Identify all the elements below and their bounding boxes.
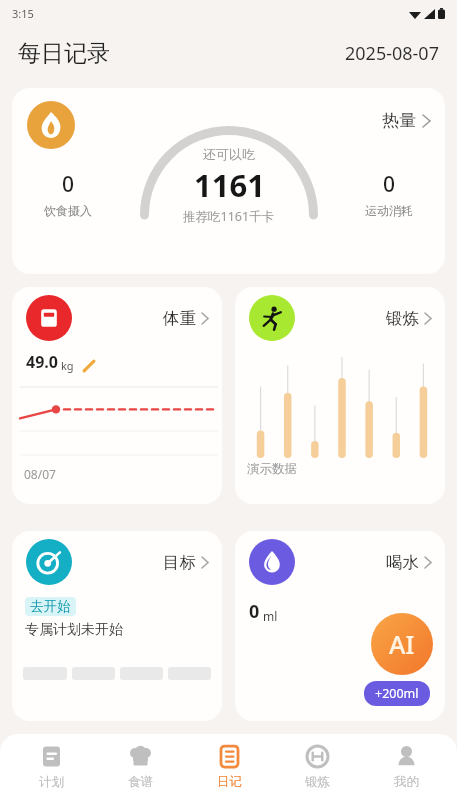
button[interactable]: 2025-08-07: [345, 41, 439, 66]
staticText: AI: [389, 627, 415, 661]
button[interactable]: 体重: [163, 308, 209, 329]
staticText: 0: [383, 170, 396, 199]
other: Weight: [26, 295, 72, 341]
staticText: 0: [249, 599, 260, 624]
button[interactable]: 热量: [382, 110, 431, 131]
other: Water: [249, 539, 295, 585]
staticText: 运动消耗: [365, 203, 413, 218]
staticText: 还可以吃: [203, 146, 255, 162]
button[interactable]: AI assistant: [371, 613, 433, 675]
staticText: 喝水: [386, 552, 419, 573]
staticText: 饮食摄入: [44, 203, 92, 218]
button[interactable]: 锻炼: [279, 742, 355, 792]
staticText: 1161: [194, 164, 265, 206]
staticText: 体重: [163, 308, 196, 329]
staticText: 热量: [382, 110, 416, 131]
staticText: 49.0: [26, 351, 58, 373]
button[interactable]: 我的: [368, 742, 444, 792]
staticText: 我的: [394, 774, 419, 790]
staticText: 08/07: [24, 466, 56, 482]
button[interactable]: Water: [235, 531, 445, 721]
button[interactable]: Weight: [12, 287, 222, 504]
staticText: 锻炼: [305, 774, 330, 790]
staticText: 食谱: [128, 774, 153, 790]
button[interactable]: Edit weight: [82, 359, 96, 373]
button[interactable]: 目标: [163, 552, 209, 573]
button[interactable]: 食谱: [102, 742, 178, 792]
staticText: 目标: [163, 552, 196, 573]
staticText: 0: [62, 170, 75, 199]
button[interactable]: Goal: [12, 531, 222, 721]
staticText: 3:15: [12, 6, 34, 21]
staticText: 锻炼: [386, 308, 419, 329]
staticText: 去开始: [30, 598, 71, 615]
staticText: 日记: [217, 774, 242, 790]
staticText: 推荐吃1161千卡: [183, 208, 275, 225]
button[interactable]: Calories: [12, 88, 445, 274]
staticText: 每日记录: [18, 39, 110, 68]
other: Goal: [26, 539, 72, 585]
staticText: kg: [61, 358, 74, 373]
button[interactable]: 日记: [191, 742, 267, 792]
button[interactable]: 锻炼: [386, 308, 432, 329]
other: Exercise: [249, 295, 295, 341]
button[interactable]: Exercise: [235, 287, 445, 504]
button[interactable]: 去开始: [25, 597, 76, 616]
other: Calories: [27, 101, 75, 149]
staticText: 计划: [39, 774, 64, 790]
button[interactable]: 喝水: [386, 552, 432, 573]
staticText: ml: [263, 608, 278, 624]
staticText: +200ml: [375, 685, 419, 702]
staticText: 专属计划未开始: [25, 621, 123, 639]
staticText: 演示数据: [247, 461, 297, 477]
button[interactable]: +200ml: [364, 681, 430, 706]
button[interactable]: 计划: [13, 742, 89, 792]
